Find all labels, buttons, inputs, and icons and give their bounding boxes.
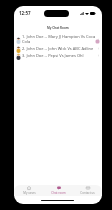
- staticText: Chat room: [51, 191, 66, 195]
- button[interactable]: 2. John Doe -- John Wick Vs ABC Adline: [14, 45, 102, 52]
- button[interactable]: New chat: [93, 37, 101, 45]
- button[interactable]: Chat room: [44, 185, 73, 196]
- button[interactable]: Contact us: [73, 185, 102, 196]
- button[interactable]: My cases: [14, 185, 44, 196]
- staticText: My cases: [23, 191, 36, 195]
- button[interactable]: 3. John Doe -- Pepsi Vs James Ohl: [14, 52, 102, 59]
- staticText: Contact us: [80, 191, 95, 195]
- staticText: 1. John Doe -- Mary JJ Hampton Vs Coca C…: [22, 34, 97, 44]
- staticText: My Chat Room: [47, 26, 69, 30]
- staticText: 12:57: [19, 10, 31, 16]
- staticText: 2. John Doe -- John Wick Vs ABC Adline: [22, 46, 97, 51]
- button[interactable]: 1. John Doe -- Mary JJ Hampton Vs Coca C…: [14, 33, 102, 45]
- staticText: 3. John Doe -- Pepsi Vs James Ohl: [22, 53, 97, 58]
